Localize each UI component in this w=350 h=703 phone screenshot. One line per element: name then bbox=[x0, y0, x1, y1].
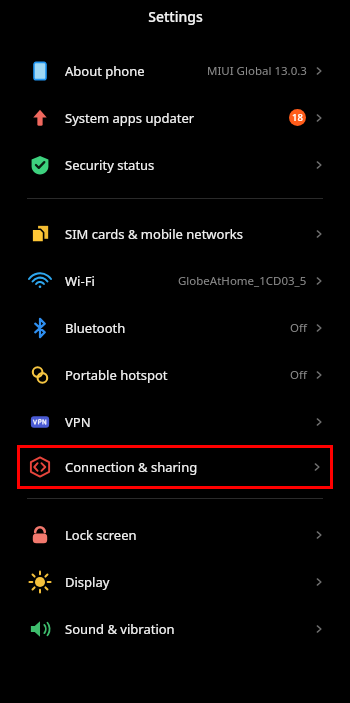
button[interactable]: Bluetooth bbox=[0, 304, 350, 351]
staticText: MIUI Global 13.0.3 bbox=[207, 63, 307, 79]
staticText: Off bbox=[290, 320, 307, 336]
staticText: 18 bbox=[292, 111, 303, 124]
staticText: Off bbox=[290, 367, 307, 383]
staticText: Connection & sharing bbox=[65, 458, 198, 476]
button[interactable]: SIM cards & mobile networks bbox=[0, 210, 350, 257]
button[interactable]: About phone bbox=[0, 47, 350, 94]
button[interactable]: Portable hotspot bbox=[0, 351, 350, 398]
staticText: SIM cards & mobile networks bbox=[65, 225, 243, 243]
button[interactable]: Connection & sharing bbox=[17, 445, 333, 489]
staticText: Settings bbox=[148, 7, 203, 26]
staticText: Portable hotspot bbox=[65, 366, 168, 384]
staticText: VPN bbox=[65, 413, 91, 431]
button[interactable]: Display bbox=[0, 558, 350, 605]
button[interactable]: VPN bbox=[0, 398, 350, 445]
staticText: Sound & vibration bbox=[65, 620, 175, 638]
staticText: Wi-Fi bbox=[65, 272, 95, 290]
button[interactable]: Sound & vibration bbox=[0, 605, 350, 652]
staticText: Security status bbox=[65, 156, 155, 174]
staticText: About phone bbox=[65, 62, 145, 80]
button[interactable]: Lock screen bbox=[0, 511, 350, 558]
button[interactable]: Wi-Fi bbox=[0, 257, 350, 304]
staticText: Bluetooth bbox=[65, 319, 126, 337]
staticText: Lock screen bbox=[65, 526, 137, 544]
staticText: Display bbox=[65, 573, 110, 591]
button[interactable]: System apps updater bbox=[0, 94, 350, 141]
staticText: System apps updater bbox=[65, 109, 195, 127]
button[interactable]: Security status bbox=[0, 141, 350, 188]
staticText: GlobeAtHome_1CD03_5 bbox=[178, 273, 307, 289]
